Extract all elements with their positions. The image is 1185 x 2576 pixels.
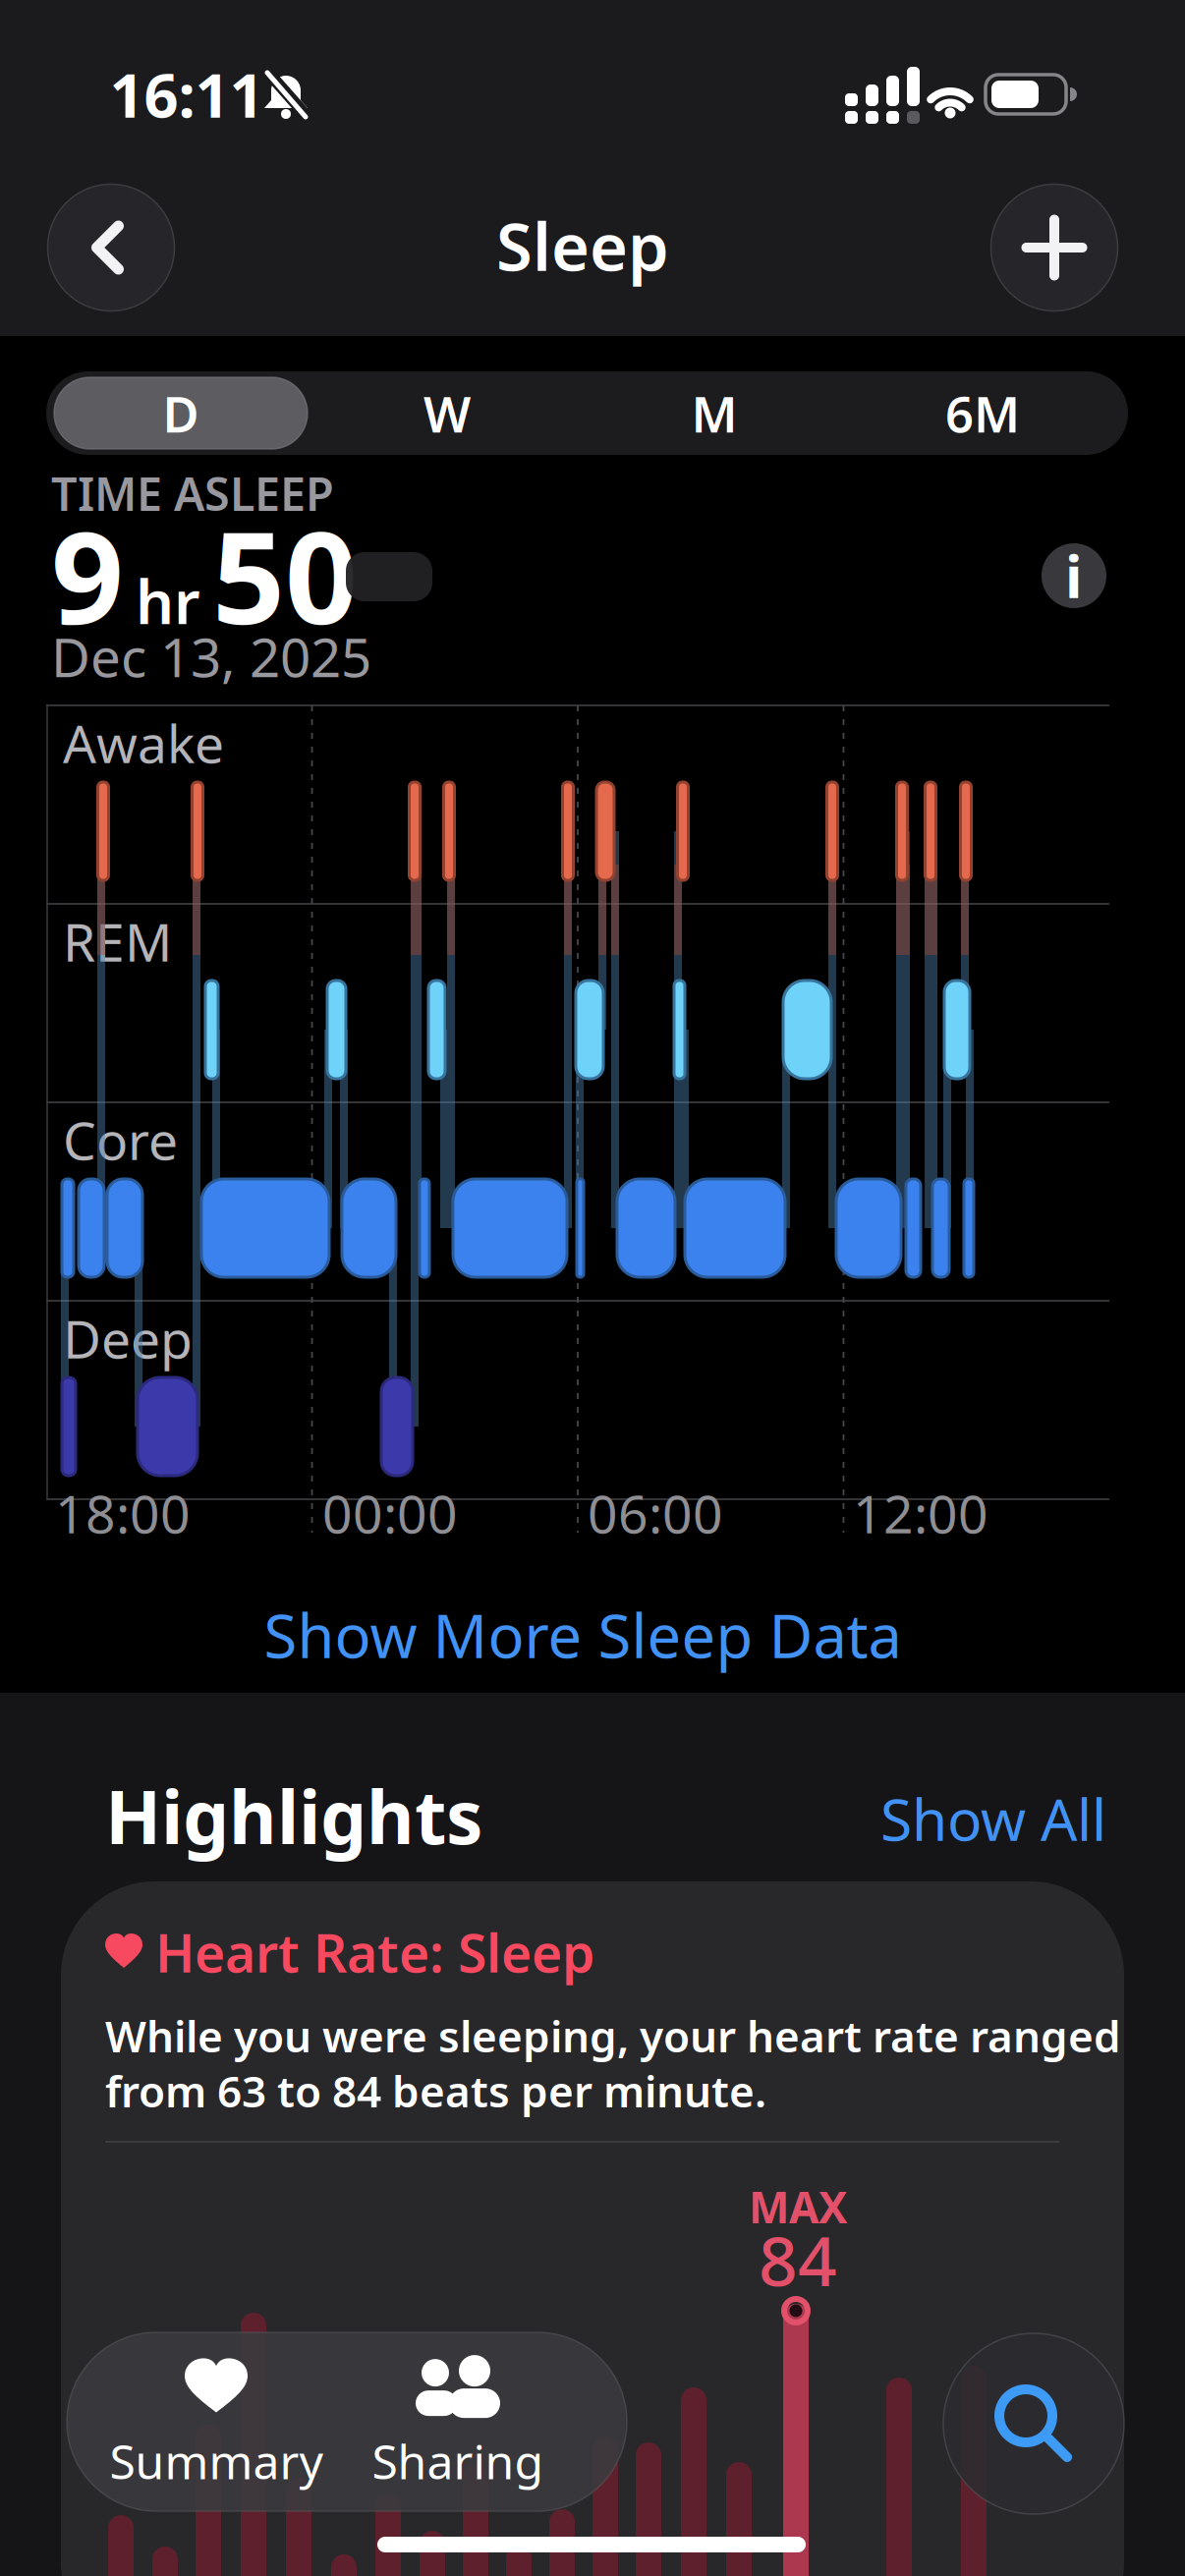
staticText: 00:00 (322, 1478, 458, 1548)
button[interactable]: Show All (880, 1780, 1106, 1857)
staticText: TIME ASLEEP (51, 463, 334, 524)
staticText: M (691, 380, 737, 446)
staticText: Heart Rate: Sleep (155, 1917, 594, 1987)
staticText: 9 (51, 490, 124, 659)
staticText: Sleep (496, 202, 669, 289)
button[interactable]: Search (943, 2333, 1124, 2514)
staticText: Deep (63, 1303, 193, 1373)
button[interactable]: Back (48, 184, 174, 311)
staticText: 84 (759, 2214, 837, 2305)
button[interactable]: Info (1042, 543, 1106, 608)
staticText: hr (136, 561, 200, 641)
staticText: 6M (945, 380, 1020, 446)
button[interactable]: M (587, 374, 842, 452)
staticText: While you were sleeping, your heart rate… (105, 2007, 1121, 2064)
staticText: W (423, 380, 471, 446)
button[interactable]: W (319, 374, 575, 452)
staticText: D (163, 380, 199, 446)
button[interactable]: Add Data (991, 184, 1118, 311)
staticText: MAX (749, 2178, 847, 2235)
button[interactable]: Sharing (335, 2341, 581, 2508)
staticText: i (1065, 537, 1083, 614)
staticText: Show All (880, 1780, 1106, 1857)
staticText: Show More Sleep Data (264, 1595, 902, 1675)
staticText: 50 (212, 490, 358, 659)
staticText: Awake (63, 708, 224, 778)
staticText: from 63 to 84 beats per minute. (105, 2062, 766, 2119)
staticText: Summary (110, 2430, 323, 2492)
staticText: Highlights (105, 1767, 482, 1864)
staticText: 16:11 (110, 54, 264, 134)
staticText: Core (63, 1105, 178, 1174)
staticText: 18:00 (55, 1478, 191, 1548)
button[interactable]: Show More Sleep Data (264, 1595, 902, 1675)
staticText: 12:00 (853, 1478, 988, 1548)
button[interactable]: Summary (93, 2341, 339, 2508)
staticText: REM (63, 906, 172, 976)
staticText: Dec 13, 2025 (51, 621, 371, 692)
button[interactable]: 6M (855, 374, 1110, 452)
staticText: 06:00 (588, 1478, 723, 1548)
button[interactable]: D (53, 374, 309, 452)
staticText: Sharing (372, 2430, 544, 2492)
